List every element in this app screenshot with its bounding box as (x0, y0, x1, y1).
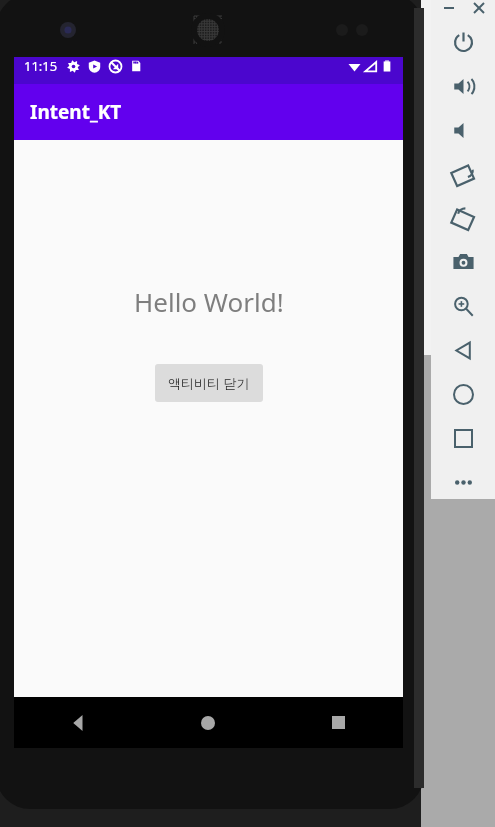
button[interactable]: Power (445, 24, 481, 60)
button[interactable]: More (445, 464, 481, 500)
button[interactable]: Home (445, 376, 481, 412)
staticText: Intent_KT (30, 99, 122, 125)
button[interactable]: Zoom (445, 288, 481, 324)
button[interactable]: Volume up (445, 68, 481, 104)
button[interactable]: Take screenshot (445, 243, 481, 279)
other: Minimise (443, 2, 455, 14)
button[interactable]: Rotate right (445, 200, 481, 236)
button[interactable]: Home (143, 697, 273, 748)
staticText: Hello World! (134, 284, 284, 319)
staticText: 11:15 (24, 57, 58, 75)
button[interactable]: Volume down (445, 112, 481, 148)
other: Close (473, 2, 485, 14)
button[interactable]: Back (14, 697, 143, 748)
staticText: 액티비티 닫기 (168, 374, 250, 392)
button[interactable]: Overview (445, 420, 481, 456)
button[interactable]: Back (445, 332, 481, 368)
button[interactable]: 액티비티 닫기 (155, 364, 263, 402)
button[interactable]: Rotate left (445, 156, 481, 192)
button[interactable]: Recent apps (273, 697, 403, 748)
